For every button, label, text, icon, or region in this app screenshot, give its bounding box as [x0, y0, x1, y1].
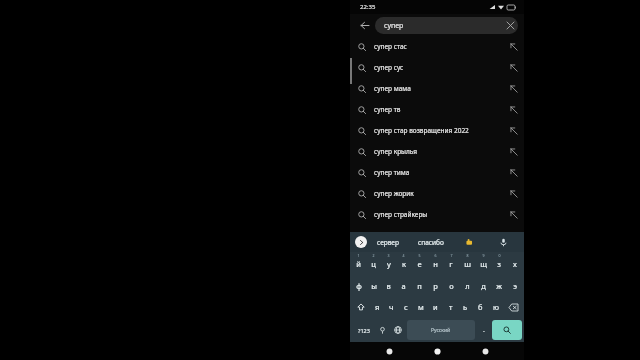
- button[interactable]: т: [443, 296, 458, 318]
- staticText: х: [513, 259, 517, 269]
- button[interactable]: р: [427, 274, 443, 296]
- button[interactable]: ч: [384, 296, 398, 318]
- button[interactable]: супер тв: [350, 99, 524, 120]
- button[interactable]: ь: [458, 296, 473, 318]
- button[interactable]: а: [396, 274, 411, 296]
- button[interactable]: супер сус: [350, 57, 524, 78]
- button[interactable]: спасибо: [409, 232, 452, 252]
- button[interactable]: супер крылья: [350, 141, 524, 162]
- staticText: Русский: [431, 327, 451, 334]
- staticText: ь: [463, 302, 468, 312]
- button[interactable]: Shift: [351, 296, 370, 318]
- button[interactable]: ы: [366, 274, 381, 296]
- button[interactable]: Back: [380, 342, 398, 360]
- button[interactable]: ю: [488, 296, 503, 318]
- button[interactable]: Expand toolbar: [355, 236, 367, 248]
- button[interactable]: ж: [491, 274, 507, 296]
- button[interactable]: х: [507, 252, 523, 274]
- button[interactable]: 1: [351, 252, 366, 274]
- staticText: 22:35: [360, 3, 376, 11]
- button[interactable]: супер стас: [350, 36, 524, 57]
- staticText: ?123: [358, 327, 370, 334]
- button[interactable]: Insert suggestion: [504, 162, 524, 183]
- button[interactable]: Backspace: [503, 296, 523, 318]
- button[interactable]: с: [398, 296, 413, 318]
- staticText: 7: [450, 253, 453, 258]
- staticText: и: [433, 302, 438, 312]
- button[interactable]: Insert suggestion: [504, 78, 524, 99]
- button[interactable]: Insert suggestion: [504, 120, 524, 141]
- button[interactable]: 3: [381, 252, 396, 274]
- staticText: супер сус: [374, 63, 504, 72]
- button[interactable]: Search: [492, 320, 522, 340]
- staticText: 5: [418, 253, 421, 258]
- button[interactable]: Thumbs up: [452, 232, 486, 252]
- staticText: е: [417, 259, 422, 269]
- staticText: а: [401, 281, 406, 291]
- button[interactable]: супер тима: [350, 162, 524, 183]
- staticText: спасибо: [418, 238, 444, 247]
- staticText: супер тима: [374, 168, 504, 177]
- button[interactable]: Change language: [390, 320, 405, 340]
- button[interactable]: 8: [459, 252, 475, 274]
- button[interactable]: л: [459, 274, 475, 296]
- button[interactable]: .: [477, 320, 491, 340]
- staticText: к: [402, 259, 406, 269]
- button[interactable]: Recent apps: [476, 342, 494, 360]
- button[interactable]: супер стар возвращения 2022: [350, 120, 524, 141]
- staticText: о: [449, 281, 454, 291]
- button[interactable]: Voice input: [486, 232, 520, 252]
- button[interactable]: э: [507, 274, 523, 296]
- button[interactable]: б: [473, 296, 488, 318]
- button[interactable]: супер мама: [350, 78, 524, 99]
- button[interactable]: Clear: [503, 18, 518, 33]
- staticText: супер тв: [374, 105, 504, 114]
- button[interactable]: Insert suggestion: [504, 141, 524, 162]
- button[interactable]: м: [413, 296, 428, 318]
- button[interactable]: 5: [411, 252, 427, 274]
- staticText: ч: [389, 302, 394, 312]
- button[interactable]: 0: [491, 252, 507, 274]
- staticText: 0: [498, 253, 501, 258]
- button[interactable]: Insert suggestion: [504, 99, 524, 120]
- staticText: у: [387, 259, 391, 269]
- staticText: л: [465, 281, 470, 291]
- button[interactable]: д: [475, 274, 491, 296]
- button[interactable]: Insert suggestion: [504, 183, 524, 204]
- button[interactable]: я: [370, 296, 384, 318]
- button[interactable]: сервер: [367, 232, 409, 252]
- button[interactable]: Back: [356, 17, 372, 33]
- button[interactable]: 9: [475, 252, 491, 274]
- button[interactable]: в: [381, 274, 396, 296]
- button[interactable]: Stickers: [375, 320, 390, 340]
- staticText: супер страйкеры: [374, 210, 504, 219]
- staticText: э: [513, 281, 517, 291]
- button[interactable]: о: [443, 274, 459, 296]
- button[interactable]: ?123: [352, 320, 375, 340]
- button[interactable]: Home: [428, 342, 446, 360]
- button[interactable]: п: [411, 274, 427, 296]
- button[interactable]: супер жорик: [350, 183, 524, 204]
- button[interactable]: Insert suggestion: [504, 57, 524, 78]
- staticText: сервер: [377, 238, 399, 247]
- button[interactable]: Русский: [407, 320, 475, 340]
- staticText: супер жорик: [374, 189, 504, 198]
- button[interactable]: 4: [396, 252, 411, 274]
- button[interactable]: супер: [375, 17, 518, 34]
- button[interactable]: 7: [443, 252, 459, 274]
- staticText: в: [386, 281, 391, 291]
- button[interactable]: ф: [351, 274, 366, 296]
- staticText: з: [497, 259, 501, 269]
- button[interactable]: Insert suggestion: [504, 204, 524, 225]
- staticText: я: [375, 302, 380, 312]
- staticText: 6: [434, 253, 437, 258]
- button[interactable]: 6: [427, 252, 443, 274]
- button[interactable]: Insert suggestion: [504, 36, 524, 57]
- button[interactable]: 2: [366, 252, 381, 274]
- staticText: б: [478, 302, 483, 312]
- staticText: .: [483, 325, 485, 335]
- staticText: ы: [371, 281, 377, 291]
- button[interactable]: и: [428, 296, 443, 318]
- staticText: 4: [402, 253, 405, 258]
- button[interactable]: супер страйкеры: [350, 204, 524, 225]
